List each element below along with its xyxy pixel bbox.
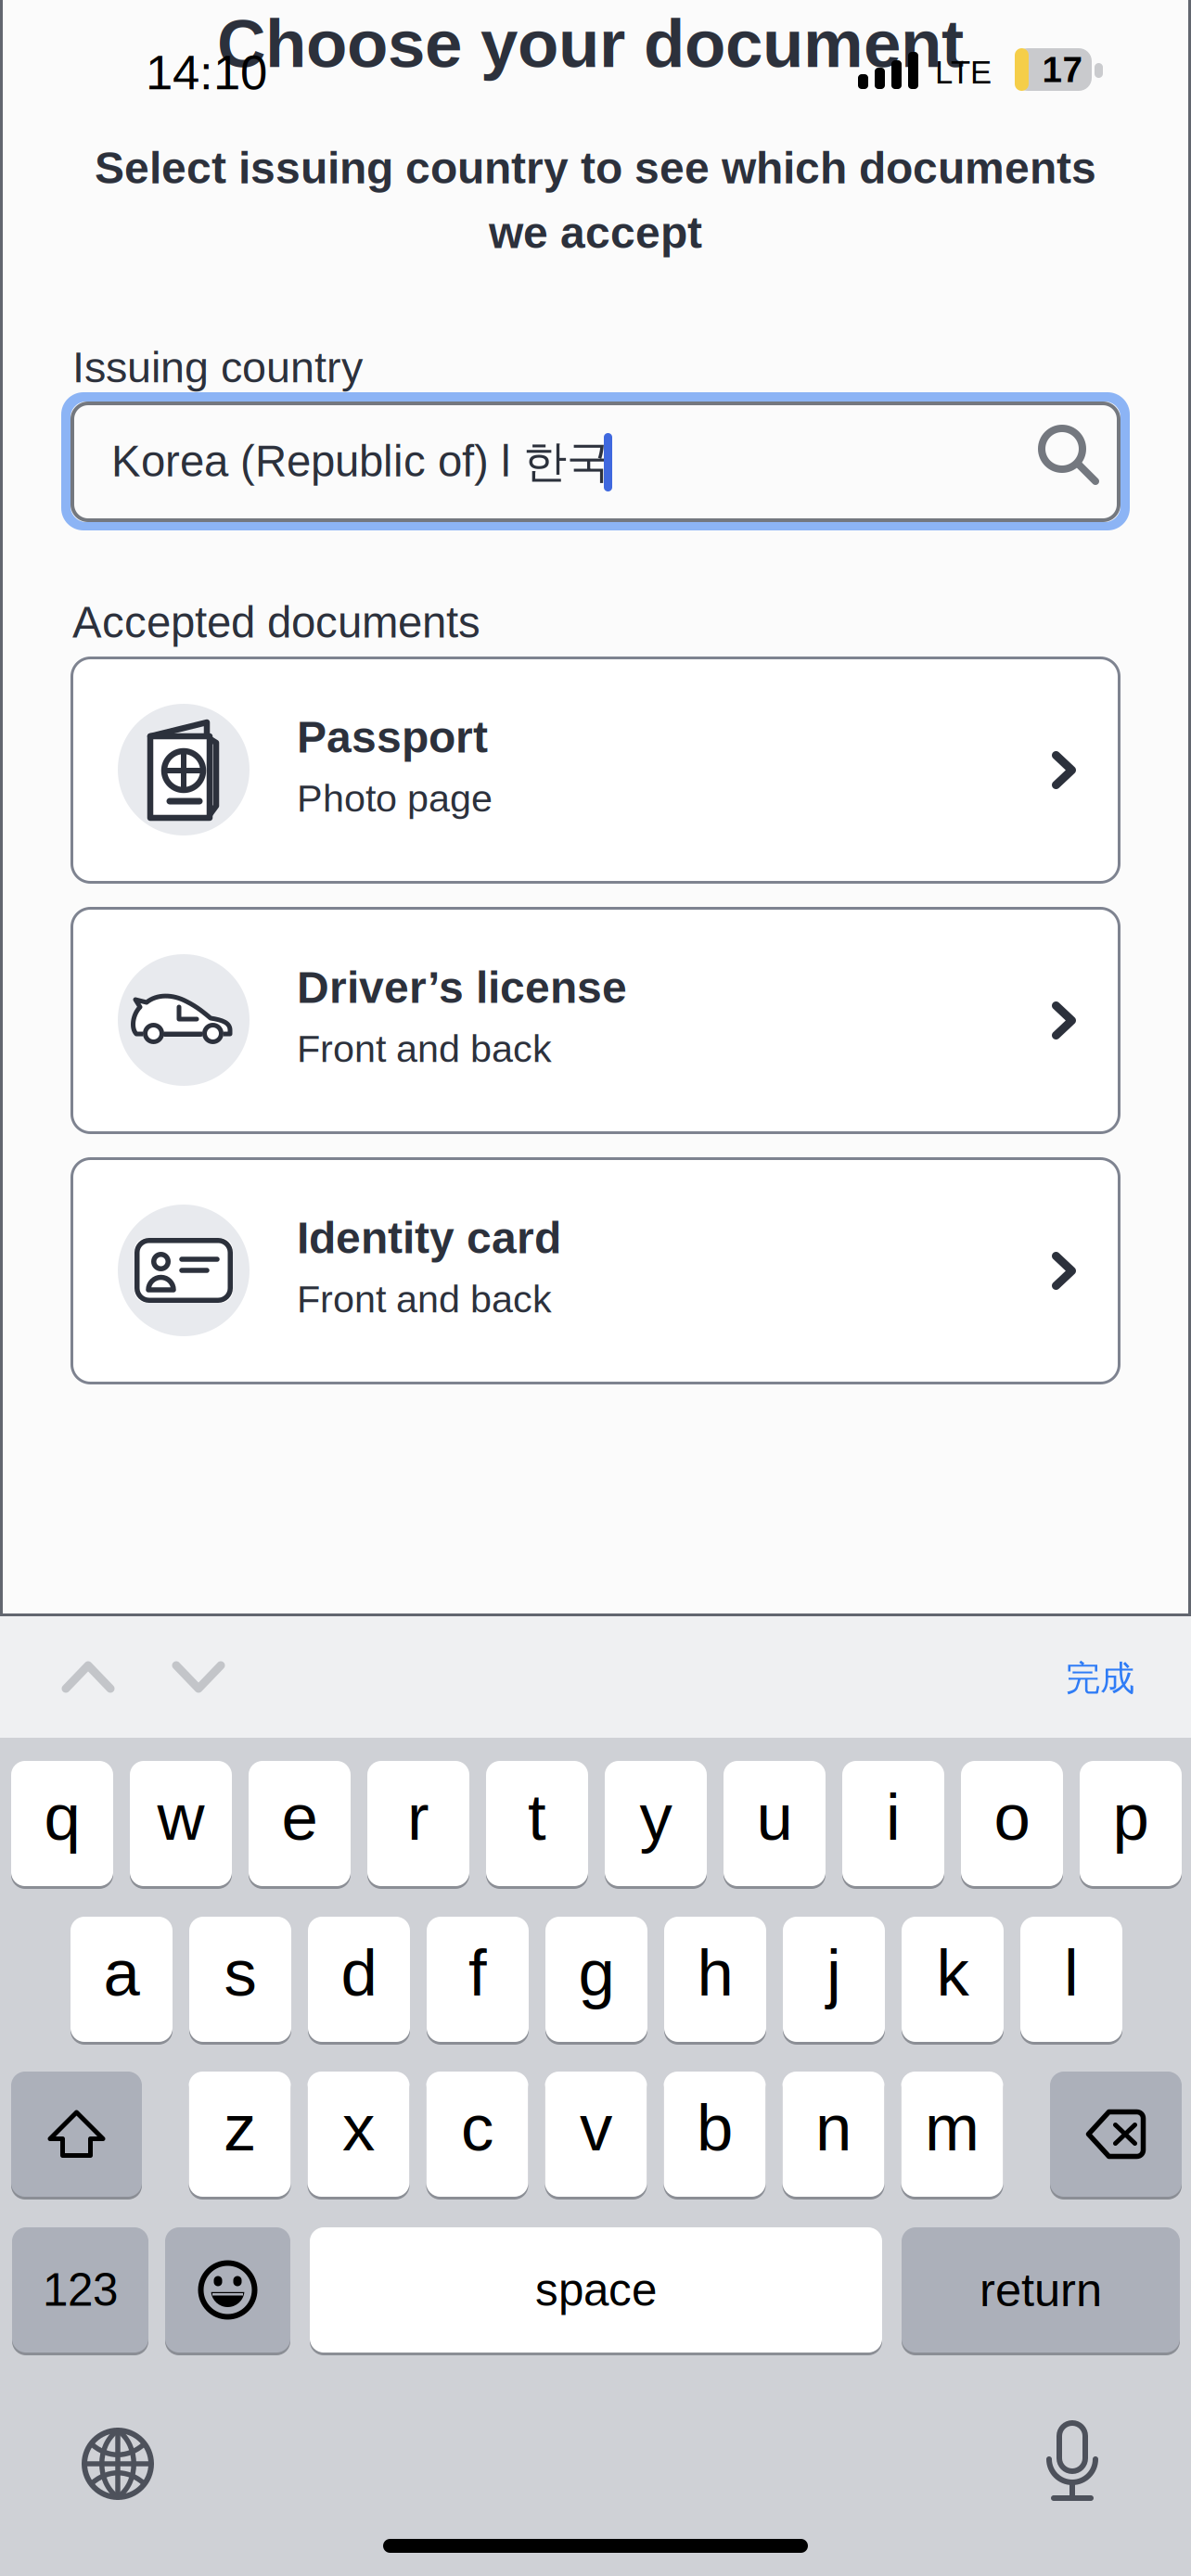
button[interactable]: o [961, 1761, 1063, 1886]
button[interactable]: v [545, 2072, 647, 2197]
staticText: Front and back [297, 1027, 552, 1070]
staticText: g [578, 1936, 615, 2009]
button[interactable]: g [545, 1917, 647, 2042]
button[interactable]: n [782, 2072, 884, 2197]
staticText: space [535, 2264, 657, 2315]
staticText: z [224, 2091, 256, 2164]
button[interactable]: w [130, 1761, 232, 1886]
staticText: Issuing country [72, 343, 363, 391]
button[interactable]: Next field [173, 1662, 224, 1691]
staticText: x [342, 2091, 375, 2164]
button[interactable]: c [426, 2072, 528, 2197]
button[interactable]: z [189, 2072, 291, 2197]
staticText: n [815, 2091, 852, 2164]
button[interactable]: u [724, 1761, 826, 1886]
staticText: s [224, 1936, 256, 2009]
button[interactable]: space [310, 2227, 882, 2353]
staticText: we accept [489, 208, 702, 257]
staticText: i [886, 1780, 901, 1854]
staticText: 14:10 [146, 45, 267, 100]
staticText: q [44, 1780, 80, 1854]
button[interactable]: Dictate [1044, 2420, 1101, 2502]
staticText: j [826, 1936, 841, 2009]
staticText: f [468, 1936, 487, 2009]
button[interactable]: i [842, 1761, 944, 1886]
staticText: 123 [43, 2264, 118, 2315]
button[interactable]: h [664, 1917, 766, 2042]
staticText: Photo page [297, 777, 493, 820]
button[interactable]: p [1080, 1761, 1182, 1886]
button[interactable]: x [307, 2072, 410, 2197]
button[interactable]: Identity card [70, 1157, 1121, 1384]
button[interactable]: k [902, 1917, 1004, 2042]
staticText: LTE [935, 54, 992, 90]
staticText: r [407, 1780, 429, 1854]
staticText: Accepted documents [72, 598, 480, 647]
staticText: Passport [297, 712, 488, 762]
button[interactable]: b [664, 2072, 766, 2197]
staticText: a [103, 1936, 140, 2009]
staticText: 完成 [1066, 1657, 1134, 1700]
button[interactable]: return [902, 2227, 1180, 2353]
button[interactable]: m [901, 2072, 1003, 2197]
staticText: d [341, 1936, 377, 2009]
button[interactable]: Passport [70, 657, 1121, 884]
button[interactable]: f [427, 1917, 529, 2042]
button[interactable]: Delete [1050, 2072, 1182, 2197]
staticText: u [756, 1780, 793, 1854]
staticText: Front and back [297, 1278, 552, 1320]
button[interactable]: Shift [11, 2072, 142, 2197]
staticText: m [925, 2091, 980, 2164]
button[interactable]: q [11, 1761, 113, 1886]
staticText: k [936, 1936, 969, 2009]
button[interactable]: Emoji [165, 2227, 290, 2353]
button[interactable]: r [367, 1761, 469, 1886]
staticText: return [980, 2264, 1102, 2316]
staticText: Driver’s license [297, 963, 627, 1012]
staticText: y [640, 1780, 672, 1854]
button[interactable]: Next keyboard [82, 2428, 154, 2500]
staticText: c [461, 2091, 493, 2164]
staticText: Korea (Republic of) l 한국 [111, 434, 610, 489]
button[interactable]: Driver’s license [70, 907, 1121, 1134]
button[interactable]: l [1020, 1917, 1122, 2042]
staticText: w [157, 1780, 205, 1854]
button[interactable]: e [249, 1761, 351, 1886]
button[interactable]: Previous field [63, 1662, 113, 1691]
button[interactable]: j [783, 1917, 885, 2042]
button[interactable]: d [308, 1917, 410, 2042]
button[interactable]: a [70, 1917, 173, 2042]
staticText: h [697, 1936, 733, 2009]
button[interactable]: 完成 [1050, 1649, 1150, 1708]
staticText: Choose your document [217, 6, 964, 81]
staticText: o [994, 1780, 1030, 1854]
staticText: Identity card [297, 1213, 561, 1263]
button[interactable]: t [486, 1761, 588, 1886]
staticText: 17 [1042, 50, 1083, 90]
staticText: p [1113, 1780, 1149, 1854]
staticText: v [580, 2091, 612, 2164]
staticText: l [1064, 1936, 1079, 2009]
button[interactable]: s [189, 1917, 291, 2042]
button[interactable]: 123 [12, 2227, 148, 2353]
staticText: b [697, 2091, 733, 2164]
button[interactable]: y [605, 1761, 707, 1886]
staticText: Select issuing country to see which docu… [95, 143, 1096, 193]
staticText: t [528, 1780, 546, 1854]
staticText: e [282, 1780, 318, 1854]
